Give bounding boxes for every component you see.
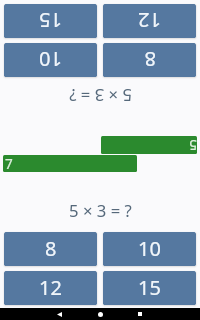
button[interactable]: 12 (4, 271, 97, 305)
button[interactable]: 8 (103, 43, 196, 77)
staticText: 12 (39, 274, 62, 301)
staticText: 8 (144, 46, 156, 73)
staticText: 10 (138, 235, 161, 262)
button[interactable]: Home (85, 308, 115, 320)
staticText: 7 (5, 155, 13, 172)
button[interactable]: 12 (103, 4, 196, 38)
button[interactable]: 7 (3, 155, 137, 172)
button[interactable]: 15 (103, 271, 196, 305)
button[interactable]: Back (44, 308, 74, 320)
button[interactable]: 15 (4, 4, 97, 38)
staticText: 5 × 3 = ? (69, 199, 132, 221)
staticText: 8 (45, 235, 57, 262)
button[interactable]: 5 (101, 136, 197, 154)
staticText: 5 (189, 136, 197, 154)
staticText: 12 (138, 7, 161, 34)
button[interactable]: 10 (103, 232, 196, 266)
button[interactable]: Recent apps (125, 308, 155, 320)
button[interactable]: 10 (4, 43, 97, 77)
button[interactable]: 8 (4, 232, 97, 266)
staticText: 5 × 3 = ? (69, 85, 132, 107)
staticText: 10 (39, 46, 62, 73)
staticText: 15 (39, 7, 62, 34)
staticText: 15 (138, 274, 161, 301)
